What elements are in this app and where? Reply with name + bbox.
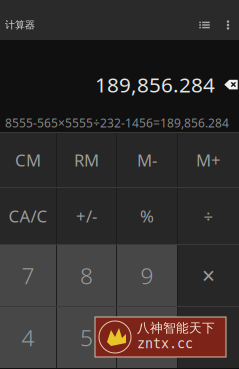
button[interactable]: Backspace [224,75,238,95]
staticText: M+ [196,149,221,171]
staticText: 8555-565×5555÷232-1456=189,856.284 [5,115,229,131]
staticText: RM [74,149,99,171]
button[interactable]: +/- [57,188,116,244]
staticText: 计算器 [5,19,35,31]
staticText: 5 [80,322,93,353]
button[interactable]: − [178,307,239,368]
staticText: 189,856.284 [95,70,215,99]
staticText: M- [137,149,157,171]
button[interactable]: ÷ [178,188,239,244]
staticText: 4 [21,322,34,353]
button[interactable]: 7 [0,245,56,306]
button[interactable]: RM [57,133,116,187]
staticText: 八神智能天下 [137,320,215,336]
staticText: CA/C [8,205,47,227]
button[interactable]: % [117,188,177,244]
button[interactable]: CA/C [0,188,56,244]
staticText: 7 [21,260,34,291]
staticText: 6 [140,322,153,353]
staticText: × [202,260,215,291]
staticText: 8 [80,260,93,291]
button[interactable]: History [190,0,219,40]
staticText: +/- [76,205,97,227]
button[interactable]: M- [117,133,177,187]
staticText: CM [15,149,41,171]
staticText: % [140,205,154,227]
button[interactable]: × [178,245,239,306]
button[interactable]: 9 [117,245,177,306]
staticText: ÷ [203,205,213,227]
button[interactable]: 4 [0,307,56,368]
staticText: zntx.cc [137,336,193,351]
button[interactable]: 5 [57,307,116,368]
button[interactable]: 6 [117,307,177,368]
button[interactable]: M+ [178,133,239,187]
button[interactable]: 8 [57,245,116,306]
staticText: 9 [140,260,153,291]
button[interactable]: CM [0,133,56,187]
staticText: − [202,322,215,353]
button[interactable]: More options [219,0,239,40]
